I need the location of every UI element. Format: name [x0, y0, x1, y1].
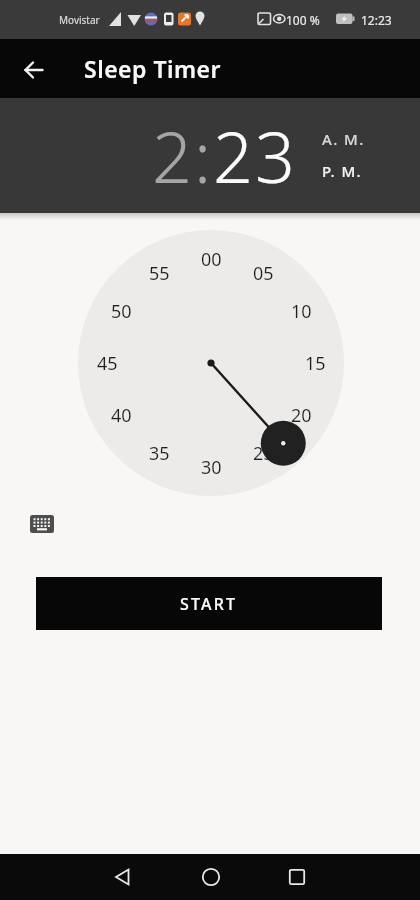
- staticText: 45: [97, 351, 118, 375]
- staticText: Movistar: [59, 13, 100, 27]
- staticText: 25: [253, 441, 274, 465]
- staticText: 00: [201, 247, 222, 271]
- staticText: 12:23: [361, 12, 392, 28]
- staticText: 100 %: [286, 12, 320, 28]
- staticText: 50: [111, 299, 132, 323]
- button[interactable]: [0, 39, 58, 98]
- button[interactable]: START: [36, 577, 382, 630]
- staticText: 35: [149, 441, 170, 465]
- button[interactable]: [103, 857, 143, 897]
- staticText: 55: [149, 261, 170, 285]
- button[interactable]: [191, 857, 231, 897]
- staticText: 30: [201, 455, 222, 479]
- staticText: 2:23: [152, 108, 297, 203]
- staticText: 20: [291, 403, 312, 427]
- staticText: 40: [111, 403, 132, 427]
- button[interactable]: [30, 515, 54, 533]
- staticText: 05: [253, 261, 274, 285]
- button[interactable]: P. M.: [322, 161, 363, 181]
- staticText: START: [180, 593, 238, 615]
- button[interactable]: A. M.: [322, 129, 365, 149]
- button[interactable]: [277, 857, 317, 897]
- staticText: 10: [291, 299, 312, 323]
- staticText: Sleep Timer: [84, 53, 222, 84]
- staticText: 15: [305, 351, 326, 375]
